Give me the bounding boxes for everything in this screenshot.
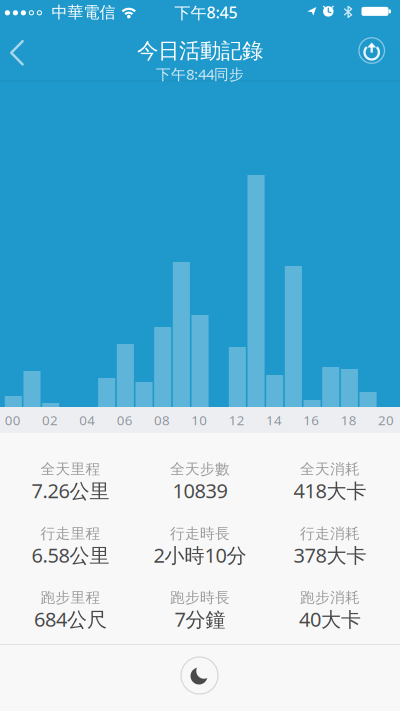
staticText: 10 xyxy=(191,411,207,429)
staticText: 行走里程 xyxy=(40,524,100,542)
staticText: 378大卡 xyxy=(293,542,366,568)
staticText: 全天消耗 xyxy=(300,460,360,478)
staticText: 下午8:45 xyxy=(174,2,237,23)
staticText: 2小時10分 xyxy=(153,542,246,568)
staticText: 18 xyxy=(341,411,357,429)
button[interactable]: Back xyxy=(2,35,32,71)
staticText: 02 xyxy=(42,411,58,429)
staticText: 行走時長 xyxy=(170,524,230,542)
staticText: 10839 xyxy=(172,477,227,504)
staticText: 今日活動記錄 xyxy=(137,38,263,64)
staticText: 418大卡 xyxy=(293,477,366,504)
staticText: 6.58公里 xyxy=(31,542,109,568)
staticText: 04 xyxy=(79,411,95,429)
staticText: 全天里程 xyxy=(40,460,100,478)
staticText: 20 xyxy=(378,411,394,429)
staticText: 下午8:44同步 xyxy=(156,64,244,84)
staticText: 中華電信 xyxy=(51,3,115,22)
staticText: 跑步里程 xyxy=(40,588,100,606)
staticText: 684公尺 xyxy=(34,606,107,632)
staticText: 00 xyxy=(5,411,21,429)
staticText: 全天步數 xyxy=(170,460,230,478)
staticText: 08 xyxy=(154,411,170,429)
button[interactable]: Sync xyxy=(350,28,394,72)
staticText: 14 xyxy=(266,411,282,429)
staticText: 12 xyxy=(229,411,245,429)
staticText: 跑步時長 xyxy=(170,588,230,606)
staticText: 跑步消耗 xyxy=(300,588,360,606)
staticText: 行走消耗 xyxy=(300,524,360,542)
staticText: 7分鐘 xyxy=(174,606,225,632)
staticText: 06 xyxy=(117,411,133,429)
staticText: 16 xyxy=(303,411,319,429)
staticText: 40大卡 xyxy=(299,606,361,632)
staticText: 7.26公里 xyxy=(31,477,109,504)
button[interactable]: Sleep mode xyxy=(177,653,221,697)
